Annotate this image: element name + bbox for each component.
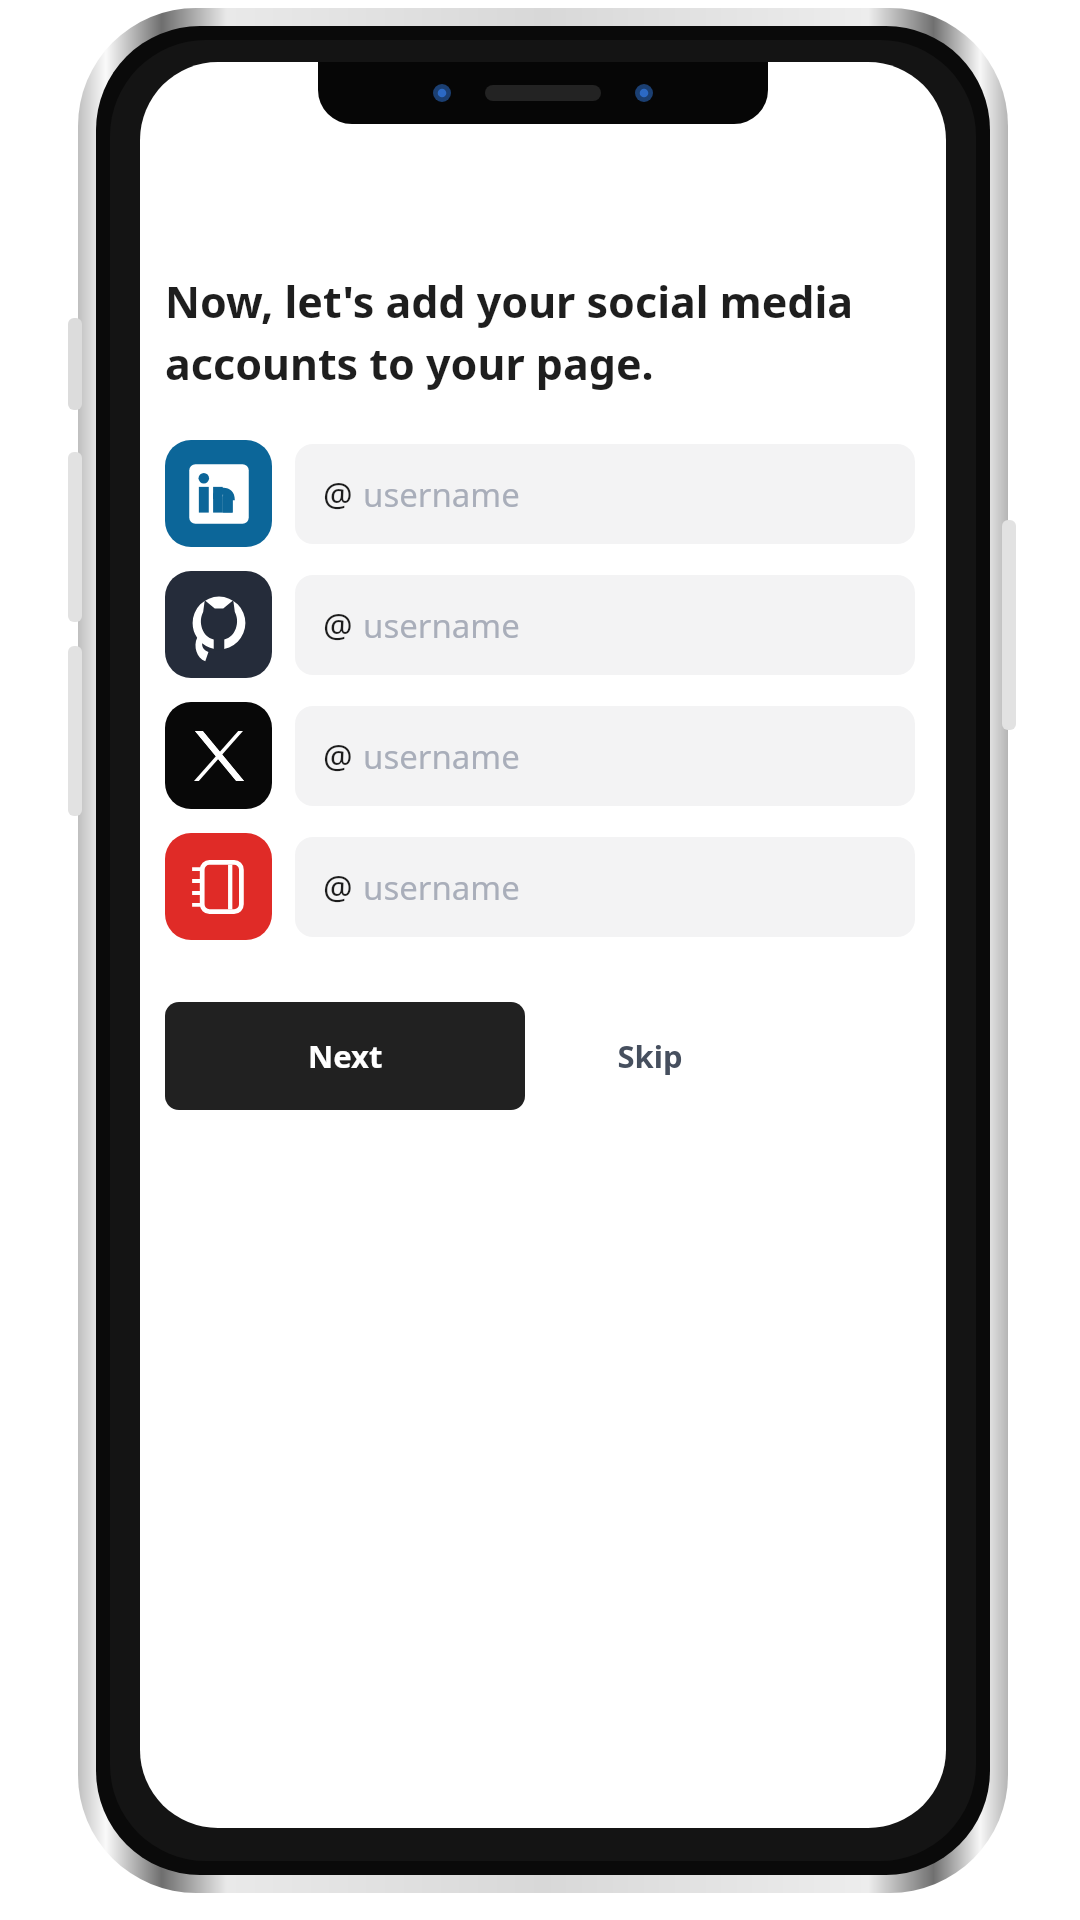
staticText: @ [323, 603, 353, 648]
button[interactable]: GitHub [165, 571, 272, 678]
staticText: Skip [617, 1035, 683, 1077]
button[interactable]: Next [165, 1002, 525, 1110]
staticText: username [363, 472, 520, 517]
button[interactable]: @ [295, 706, 915, 806]
button[interactable]: Skip [525, 1002, 775, 1110]
staticText: username [363, 734, 520, 779]
staticText: @ [323, 472, 353, 517]
button[interactable]: @ [295, 575, 915, 675]
button[interactable]: Journal [165, 833, 272, 940]
staticText: Now, let's add your social media account… [165, 272, 865, 392]
staticText: @ [323, 865, 353, 910]
button[interactable]: LinkedIn [165, 440, 272, 547]
staticText: Next [308, 1035, 383, 1077]
button[interactable]: X [165, 702, 272, 809]
staticText: username [363, 603, 520, 648]
staticText: username [363, 865, 520, 910]
button[interactable]: @ [295, 837, 915, 937]
button[interactable]: @ [295, 444, 915, 544]
staticText: @ [323, 734, 353, 779]
